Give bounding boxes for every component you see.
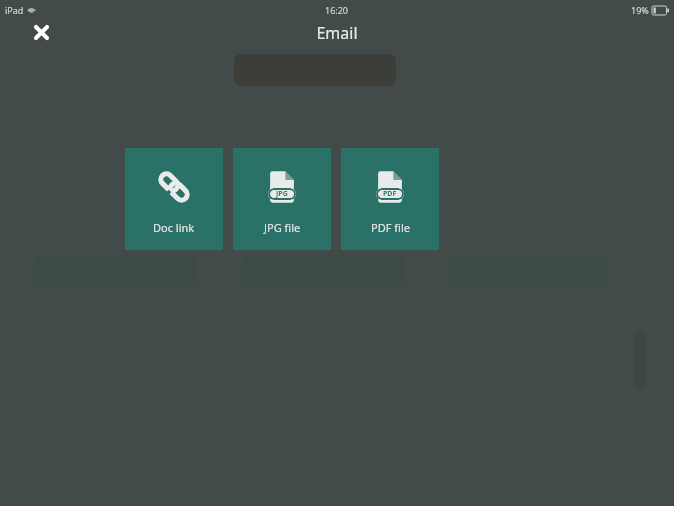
- button[interactable]: Close: [24, 15, 58, 49]
- staticText: JPG file: [264, 220, 301, 235]
- staticText: JPG: [276, 189, 288, 199]
- staticText: iPad: [5, 4, 24, 16]
- staticText: Doc link: [153, 220, 195, 235]
- button[interactable]: PDF: [341, 148, 439, 250]
- button[interactable]: JPG: [233, 148, 331, 250]
- staticText: PDF: [383, 189, 397, 199]
- staticText: Email: [0, 22, 674, 44]
- staticText: 19%: [631, 4, 649, 16]
- staticText: PDF file: [371, 220, 410, 235]
- staticText: 16:20: [325, 4, 349, 16]
- button[interactable]: Doc link: [125, 148, 223, 250]
